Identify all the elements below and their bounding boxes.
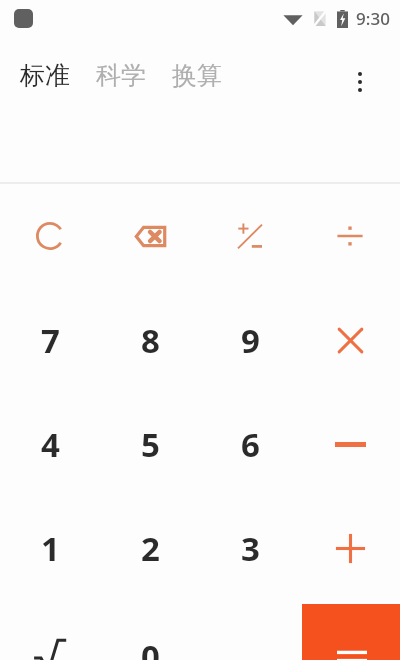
button[interactable]: Plus [300,496,400,600]
button[interactable]: Multiply [300,288,400,392]
button[interactable]: 4 [0,392,100,496]
button[interactable]: 8 [100,288,200,392]
staticText: 9 [241,318,260,363]
staticText: 3 [241,526,260,571]
button[interactable]: More options [336,58,384,106]
button[interactable]: 科学 [92,54,150,97]
staticText: 9:30 [356,7,390,30]
staticText: 2 [141,526,160,571]
staticText: 0 [141,634,160,660]
button[interactable]: Square root [0,600,100,660]
button[interactable]: 3 [200,496,300,600]
button[interactable]: Plus minus [200,184,300,288]
button[interactable]: 5 [100,392,200,496]
staticText: 科学 [96,60,146,91]
button[interactable]: 标准 [16,54,74,97]
button[interactable]: Clear [0,184,100,288]
button[interactable]: 7 [0,288,100,392]
staticText: 4 [41,422,60,467]
staticText: 1 [41,526,60,571]
button[interactable]: 2 [100,496,200,600]
button[interactable]: Equals [302,604,400,660]
button[interactable]: 0 [100,600,200,660]
button[interactable]: Divide [300,184,400,288]
button[interactable]: Backspace [100,184,200,288]
button[interactable]: 换算 [168,54,226,97]
staticText: 标准 [20,60,70,91]
button[interactable]: 1 [0,496,100,600]
button[interactable]: 9 [200,288,300,392]
button[interactable]: Minus [300,392,400,496]
staticText: 6 [241,422,260,467]
staticText: 5 [141,422,160,467]
button[interactable]: 6 [200,392,300,496]
staticText: 7 [41,318,60,363]
staticText: 8 [141,318,160,363]
staticText: 换算 [172,60,222,91]
